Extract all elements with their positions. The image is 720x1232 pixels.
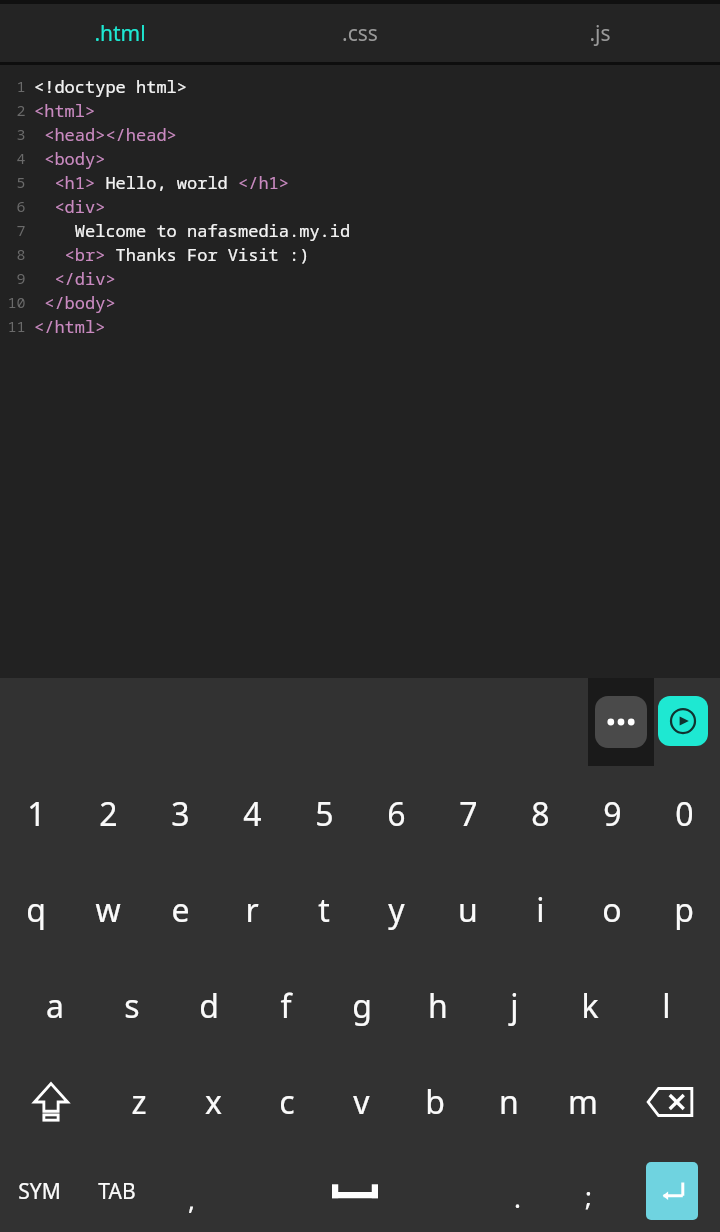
button[interactable]: s <box>93 958 170 1054</box>
button[interactable]: Space <box>227 1150 482 1232</box>
button[interactable]: , <box>156 1150 227 1232</box>
button[interactable]: Backspace <box>620 1054 720 1150</box>
button[interactable]: Shift <box>0 1054 101 1150</box>
staticText: f <box>280 984 292 1028</box>
button[interactable]: 9 <box>576 766 648 862</box>
button[interactable]: .css <box>240 4 480 62</box>
button[interactable]: 0 <box>648 766 720 862</box>
button[interactable]: Enter <box>646 1162 698 1220</box>
button[interactable]: Run <box>658 696 708 746</box>
button[interactable]: 3 <box>144 766 216 862</box>
button[interactable]: r <box>216 862 288 958</box>
button[interactable]: TAB <box>78 1150 156 1232</box>
staticText: g <box>352 984 372 1028</box>
staticText: b <box>425 1080 445 1124</box>
button[interactable]: More options <box>595 696 647 748</box>
staticText: 7 <box>16 220 26 240</box>
staticText: <head></head> <box>34 123 177 146</box>
button[interactable]: p <box>648 862 720 958</box>
button[interactable]: SYM <box>0 1150 78 1232</box>
button[interactable]: 4 <box>216 766 288 862</box>
button[interactable]: w <box>72 862 144 958</box>
button[interactable]: g <box>324 958 400 1054</box>
staticText: Welcome to nafasmedia.my.id <box>34 219 351 242</box>
staticText: <h1> Hello, world </h1> <box>34 171 289 194</box>
staticText: r <box>245 888 259 932</box>
button[interactable]: l <box>628 958 704 1054</box>
button[interactable]: .html <box>0 4 240 62</box>
staticText: q <box>26 888 46 932</box>
button[interactable]: 7 <box>432 766 504 862</box>
staticText: TAB <box>98 1177 136 1206</box>
button[interactable]: m <box>546 1054 620 1150</box>
staticText: y <box>388 888 405 932</box>
staticText: 3 <box>171 792 190 836</box>
staticText: 2 <box>16 100 26 120</box>
staticText: 0 <box>675 792 694 836</box>
staticText: e <box>171 888 190 932</box>
button[interactable]: y <box>360 862 432 958</box>
staticText: <html> <box>34 99 96 122</box>
button[interactable]: a <box>16 958 93 1054</box>
staticText: 9 <box>16 268 26 288</box>
button[interactable]: z <box>101 1054 176 1150</box>
staticText: u <box>458 888 478 932</box>
staticText: v <box>353 1080 370 1124</box>
staticText: 1 <box>16 76 26 96</box>
staticText: s <box>124 984 140 1028</box>
button[interactable]: d <box>170 958 247 1054</box>
button[interactable]: h <box>400 958 476 1054</box>
button[interactable]: 6 <box>360 766 432 862</box>
button[interactable]: c <box>250 1054 324 1150</box>
staticText: j <box>510 984 519 1028</box>
staticText: a <box>46 984 64 1028</box>
staticText: 6 <box>16 196 26 216</box>
button[interactable]: .js <box>480 4 720 62</box>
button[interactable]: . <box>482 1150 553 1232</box>
staticText: <!doctype html> <box>34 75 187 98</box>
button[interactable]: 1 <box>0 766 72 862</box>
staticText: 10 <box>7 292 26 312</box>
button[interactable]: v <box>324 1054 398 1150</box>
staticText: 1 <box>27 792 46 836</box>
button[interactable]: q <box>0 862 72 958</box>
staticText: x <box>205 1080 222 1124</box>
staticText: <body> <box>34 147 106 170</box>
staticText: 3 <box>16 124 26 144</box>
staticText: ; <box>585 1178 592 1213</box>
button[interactable]: 8 <box>504 766 576 862</box>
button[interactable]: n <box>472 1054 546 1150</box>
staticText: </html> <box>34 315 106 338</box>
button[interactable]: x <box>176 1054 250 1150</box>
button[interactable]: f <box>247 958 324 1054</box>
staticText: </div> <box>34 267 116 290</box>
staticText: k <box>581 984 599 1028</box>
staticText: 4 <box>243 792 262 836</box>
staticText: .js <box>589 19 611 48</box>
button[interactable]: ; <box>553 1150 624 1232</box>
button[interactable]: b <box>398 1054 472 1150</box>
staticText: </body> <box>34 291 116 314</box>
staticText: 8 <box>531 792 550 836</box>
button[interactable]: 5 <box>288 766 360 862</box>
staticText: n <box>499 1080 519 1124</box>
staticText: m <box>568 1080 598 1124</box>
button[interactable]: t <box>288 862 360 958</box>
button[interactable]: k <box>552 958 628 1054</box>
button[interactable]: i <box>504 862 576 958</box>
button[interactable]: e <box>144 862 216 958</box>
button[interactable]: j <box>476 958 552 1054</box>
staticText: .html <box>94 19 146 48</box>
staticText: . <box>514 1180 521 1215</box>
staticText: 5 <box>315 792 334 836</box>
button[interactable]: o <box>576 862 648 958</box>
staticText: 6 <box>387 792 406 836</box>
staticText: c <box>279 1080 295 1124</box>
staticText: d <box>199 984 219 1028</box>
staticText: <br> Thanks For Visit :) <box>34 243 310 266</box>
button[interactable]: 2 <box>72 766 144 862</box>
staticText: 4 <box>16 148 26 168</box>
button[interactable]: u <box>432 862 504 958</box>
staticText: 8 <box>16 244 26 264</box>
staticText: 2 <box>99 792 118 836</box>
